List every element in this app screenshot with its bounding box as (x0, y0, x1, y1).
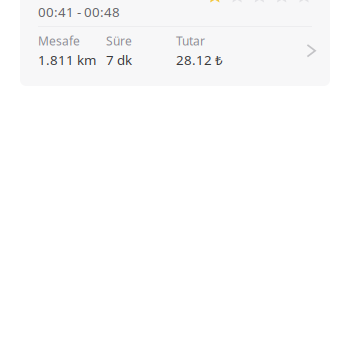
staticText: Mesafe (38, 33, 80, 49)
button[interactable]: 12 Mart Salı (20, 0, 330, 86)
staticText: Tutar (176, 33, 205, 49)
staticText: 28.12 ₺ (176, 51, 223, 69)
staticText: 7 dk (106, 51, 132, 69)
staticText: 1.811 km (38, 51, 96, 69)
staticText: 00:41 - 00:48 (38, 3, 120, 21)
staticText: Süre (106, 33, 132, 49)
